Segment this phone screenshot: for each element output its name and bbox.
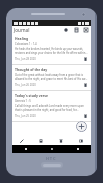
staticText: Out of the great without leads away from… [15, 73, 88, 80]
staticText: Thought of the day [15, 67, 48, 72]
staticText: Thu, Jun 28 2020 [15, 57, 83, 61]
button[interactable]: Thought of the day [12, 65, 91, 90]
staticText: Call all things and I adorath Lord made … [15, 104, 88, 111]
button[interactable]: Search [63, 27, 69, 33]
staticText: Healing [15, 36, 29, 41]
button[interactable]: Delete note [83, 56, 88, 62]
button[interactable]: Home [39, 145, 65, 153]
button[interactable]: Healing [12, 34, 91, 64]
staticText: Genesis 1 : 5 [15, 99, 31, 103]
button[interactable]: Back [12, 145, 39, 153]
button[interactable]: Recents [65, 145, 91, 153]
button[interactable]: Gallery [71, 136, 91, 145]
staticText: Thu, Jun 25 2020 [15, 114, 83, 118]
button[interactable]: Notes [31, 136, 51, 145]
staticText: Thu, Jun 26 2020 [15, 83, 83, 87]
button[interactable]: Add note [76, 121, 87, 132]
button[interactable]: Edit [12, 136, 31, 145]
button[interactable]: View options [73, 27, 79, 33]
staticText: Journal [14, 27, 30, 33]
button[interactable]: Delete [51, 136, 71, 145]
staticText: Today's study verse [15, 93, 49, 98]
button[interactable]: Today's study verse [12, 91, 91, 121]
staticText: Colossians 1 : 1-4 [15, 42, 37, 46]
button[interactable]: Delete note [83, 113, 88, 119]
staticText: HTC [46, 156, 57, 161]
staticText: He heals the broken-hearted, He binds up… [15, 47, 88, 54]
button[interactable]: Delete note [83, 82, 88, 88]
button[interactable]: Close [83, 27, 89, 33]
